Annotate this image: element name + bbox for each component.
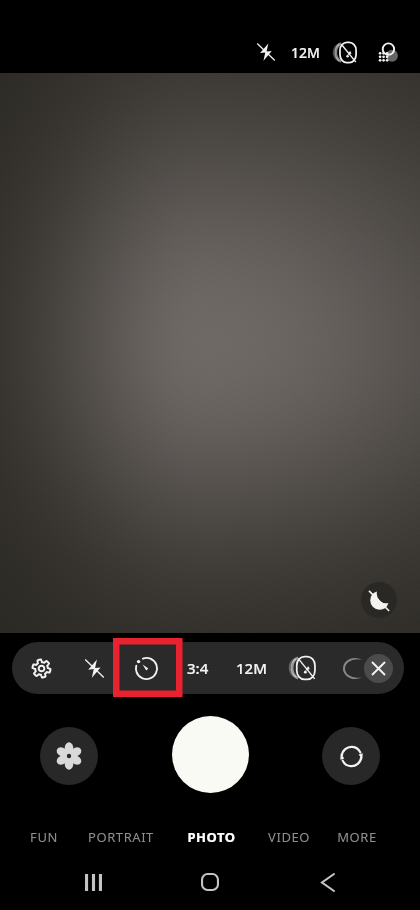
button[interactable]: Settings: [371, 34, 405, 70]
staticText: VIDEO: [268, 828, 310, 846]
button[interactable]: Timer: [126, 642, 166, 694]
staticText: 12M: [236, 658, 267, 678]
staticText: PHOTO: [187, 828, 236, 846]
button[interactable]: Switch camera: [322, 727, 380, 785]
button[interactable]: Back: [304, 858, 352, 906]
button[interactable]: Motion photo off: [283, 642, 323, 694]
staticText: PORTRAIT: [88, 828, 154, 846]
button[interactable]: VIDEO: [249, 821, 329, 853]
button[interactable]: PHOTO: [171, 821, 251, 853]
staticText: FUN: [30, 828, 58, 846]
button[interactable]: Settings: [24, 642, 58, 694]
button[interactable]: 12M: [228, 642, 274, 694]
button[interactable]: PORTRAIT: [81, 821, 161, 853]
button[interactable]: Filters: [40, 727, 98, 785]
button[interactable]: Home: [186, 858, 234, 906]
button[interactable]: Night mode off: [361, 582, 397, 618]
button[interactable]: 12M: [285, 34, 325, 70]
button[interactable]: Close: [364, 654, 393, 683]
staticText: 3:4: [187, 658, 209, 678]
button[interactable]: Flash off: [77, 642, 111, 694]
staticText: 12M: [291, 43, 320, 62]
button[interactable]: 3:4: [177, 642, 219, 694]
staticText: MORE: [337, 828, 377, 846]
button[interactable]: Recents: [69, 858, 117, 906]
button[interactable]: Flash off: [249, 34, 283, 70]
button[interactable]: Motion photo off: [328, 34, 362, 70]
button[interactable]: Take photo: [172, 716, 249, 793]
button[interactable]: FUN: [4, 821, 84, 853]
button[interactable]: MORE: [317, 821, 397, 853]
